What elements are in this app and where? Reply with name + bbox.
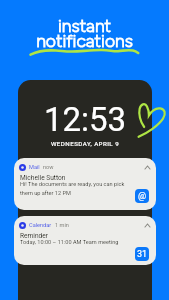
button[interactable]: Mail	[14, 158, 156, 210]
staticText: Mail	[29, 164, 40, 171]
button[interactable]: Mail app	[135, 189, 149, 203]
staticText: now	[43, 164, 54, 171]
staticText: 31	[137, 249, 148, 260]
staticText: WEDNESDAY, APRIL 9	[18, 140, 152, 147]
staticText: Hi! The documents are ready, you can pic…	[20, 181, 125, 196]
staticText: Today, 10:00 – 11:00 AM Team meeting	[20, 239, 119, 246]
button[interactable]: Calendar app	[135, 247, 149, 261]
staticText: @	[138, 191, 147, 202]
staticText: instant notifications	[0, 15, 169, 51]
staticText: 1 min	[55, 222, 69, 229]
staticText: Calendar	[29, 222, 52, 229]
staticText: Michelle Sutton	[20, 174, 66, 182]
staticText: Reminder	[20, 232, 49, 240]
button[interactable]: Calendar	[14, 216, 156, 265]
staticText: 12:53	[18, 100, 152, 139]
